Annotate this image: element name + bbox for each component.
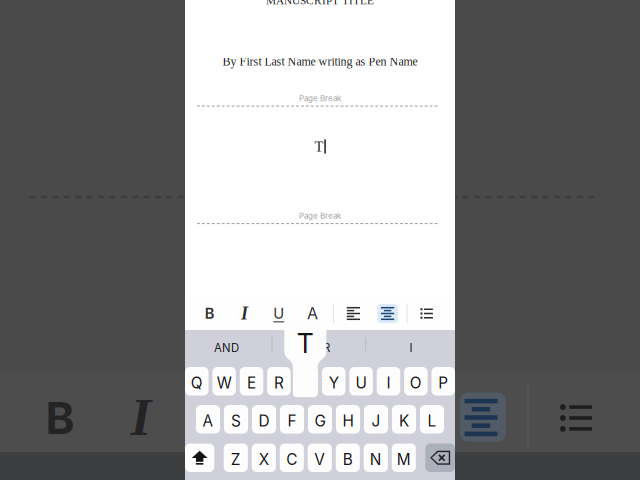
button[interactable]: Align center (373, 297, 403, 330)
button[interactable]: H (336, 405, 360, 433)
button[interactable]: P (431, 367, 455, 395)
button[interactable]: G (308, 405, 332, 433)
staticText: A (202, 412, 213, 430)
staticText: T (297, 327, 314, 359)
staticText: J (371, 412, 380, 430)
button[interactable]: X (252, 443, 276, 472)
button[interactable]: Z (224, 443, 248, 472)
staticText: R (274, 374, 284, 392)
button[interactable]: B (195, 297, 225, 330)
button[interactable]: I (367, 333, 454, 363)
button[interactable]: Delete (425, 443, 455, 472)
button[interactable]: Bulleted list (412, 297, 442, 330)
staticText: H (342, 412, 353, 430)
button[interactable]: U (349, 367, 373, 395)
staticText: Y (329, 374, 339, 392)
button[interactable]: Shift (185, 443, 214, 472)
button[interactable]: U (264, 297, 294, 330)
staticText: By First Last Name writing as Pen Name (222, 55, 417, 68)
staticText: Page Break (299, 93, 341, 103)
button[interactable]: C (280, 443, 304, 472)
staticText: B (45, 391, 74, 445)
button[interactable]: R (267, 367, 291, 395)
button[interactable]: N (364, 443, 388, 472)
button[interactable]: E (240, 367, 263, 395)
staticText: B (205, 305, 215, 322)
staticText: THEIR (298, 341, 330, 355)
staticText: MANUSCRIPT TITLE (266, 0, 374, 7)
staticText: O (410, 374, 422, 392)
staticText: U (273, 305, 284, 322)
staticText: T (315, 138, 324, 155)
button[interactable]: THEIR (270, 333, 357, 363)
button[interactable]: Align left (338, 297, 368, 330)
staticText: L (427, 412, 436, 430)
staticText: A (307, 304, 318, 323)
staticText: I (386, 374, 390, 392)
staticText: K (399, 412, 409, 430)
button[interactable]: S (224, 405, 248, 433)
button[interactable]: B (336, 443, 360, 472)
button[interactable]: J (364, 405, 388, 433)
staticText: C (286, 450, 297, 469)
button[interactable]: K (392, 405, 416, 433)
button[interactable]: L (420, 405, 444, 433)
staticText: Q (191, 374, 203, 392)
button[interactable]: AND (183, 333, 270, 363)
button[interactable]: A (196, 405, 220, 433)
button[interactable]: M (392, 443, 416, 472)
staticText: Z (231, 450, 241, 469)
staticText: I (130, 387, 151, 447)
button[interactable]: Y (322, 367, 345, 395)
button[interactable]: I (230, 297, 260, 330)
staticText: B (343, 450, 353, 469)
button[interactable]: Q (185, 367, 208, 395)
button[interactable]: D (252, 405, 276, 433)
staticText: G (314, 412, 325, 430)
button[interactable]: O (404, 367, 428, 395)
staticText: I (241, 303, 248, 323)
staticText: S (231, 412, 241, 430)
staticText: F (287, 412, 296, 430)
staticText: X (259, 450, 269, 469)
staticText: M (397, 450, 411, 469)
staticText: P (438, 374, 448, 392)
staticText: U (356, 374, 367, 392)
staticText: D (258, 412, 269, 430)
staticText: N (370, 450, 382, 469)
staticText: I (409, 341, 412, 355)
button[interactable]: V (308, 443, 332, 472)
staticText: E (247, 374, 256, 392)
staticText: AND (214, 341, 239, 355)
button[interactable]: F (280, 405, 304, 433)
button[interactable]: W (212, 367, 236, 395)
button[interactable]: I (377, 367, 400, 395)
staticText: Page Break (299, 211, 341, 221)
button[interactable]: A (297, 297, 327, 330)
staticText: V (314, 450, 325, 469)
staticText: W (217, 374, 232, 392)
